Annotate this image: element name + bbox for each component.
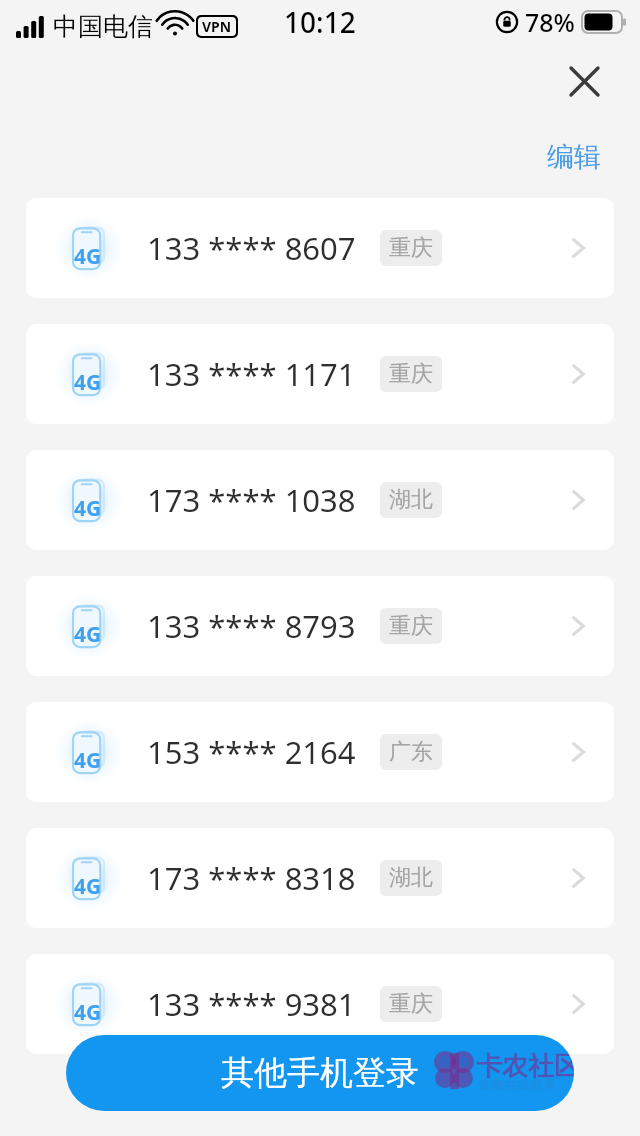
staticText: 4G xyxy=(74,998,102,1027)
staticText: 4G xyxy=(74,872,102,901)
button[interactable]: 4G xyxy=(26,576,614,676)
staticText: 中国电信 xyxy=(53,11,153,42)
staticText: 重庆 xyxy=(389,612,433,640)
staticText: 10:12 xyxy=(284,3,356,41)
button[interactable]: 4G xyxy=(26,450,614,550)
button[interactable]: 4G xyxy=(26,324,614,424)
staticText: 133 **** 1171 xyxy=(147,353,356,395)
staticText: 4G xyxy=(74,242,102,271)
staticText: 133 **** 8607 xyxy=(147,227,356,269)
staticText: 编辑 xyxy=(547,140,601,174)
staticText: 金融在线教育 xyxy=(478,1076,556,1092)
button[interactable]: 4G xyxy=(26,198,614,298)
button[interactable]: 编辑 xyxy=(524,134,624,180)
staticText: 4G xyxy=(74,620,102,649)
staticText: 78% xyxy=(525,5,575,39)
button[interactable]: 4G xyxy=(26,702,614,802)
staticText: 173 **** 1038 xyxy=(147,479,356,521)
staticText: 重庆 xyxy=(389,990,433,1018)
staticText: 重庆 xyxy=(389,234,433,262)
staticText: 广东 xyxy=(389,738,433,766)
staticText: 重庆 xyxy=(389,360,433,388)
staticText: 其他手机登录 xyxy=(221,1052,419,1094)
button[interactable]: 4G xyxy=(26,954,614,1054)
staticText: 湖北 xyxy=(389,486,433,514)
staticText: 4G xyxy=(74,368,102,397)
staticText: 湖北 xyxy=(389,864,433,892)
button[interactable]: Close xyxy=(558,55,610,107)
staticText: 4G xyxy=(74,494,102,523)
staticText: 133 **** 8793 xyxy=(147,605,356,647)
staticText: 133 **** 9381 xyxy=(147,983,356,1025)
staticText: 卡农社区 xyxy=(476,1050,574,1083)
staticText: 4G xyxy=(74,746,102,775)
staticText: 173 **** 8318 xyxy=(147,857,356,899)
button[interactable]: 4G xyxy=(26,828,614,928)
staticText: 153 **** 2164 xyxy=(147,731,356,773)
staticText: VPN xyxy=(202,17,232,36)
button[interactable]: 其他手机登录 xyxy=(66,1035,574,1111)
